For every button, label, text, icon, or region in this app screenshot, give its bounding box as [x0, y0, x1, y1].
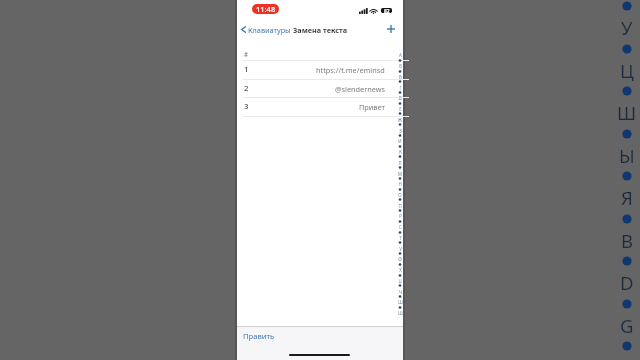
staticText: С: [399, 224, 402, 229]
staticText: https://t.me/eminsd: [316, 65, 385, 75]
button[interactable]: 1: [237, 60, 403, 79]
staticText: 3: [244, 101, 249, 112]
staticText: Х: [399, 267, 402, 272]
staticText: 11:48: [256, 4, 276, 14]
staticText: Т: [399, 235, 402, 240]
button[interactable]: Добавить: [383, 21, 399, 37]
staticText: А: [399, 52, 402, 57]
button[interactable]: Клавиатуры: [241, 23, 291, 36]
staticText: Ш: [398, 299, 403, 304]
staticText: @slendernews: [335, 84, 385, 94]
staticText: Л: [398, 160, 402, 165]
staticText: Е: [399, 106, 402, 111]
staticText: М: [398, 171, 402, 176]
staticText: Ц: [398, 278, 402, 283]
staticText: Ш: [617, 100, 637, 125]
staticText: У: [621, 15, 633, 40]
staticText: К: [399, 149, 402, 154]
staticText: У: [399, 246, 402, 251]
staticText: Я: [621, 185, 633, 210]
staticText: Замена текста: [293, 25, 348, 35]
button[interactable]: 2: [237, 79, 403, 98]
staticText: #: [244, 50, 248, 58]
staticText: 2: [244, 83, 249, 94]
staticText: Клавиатуры: [248, 25, 291, 35]
staticText: Д: [398, 95, 402, 100]
staticText: П: [398, 203, 402, 208]
staticText: Б: [399, 63, 402, 68]
staticText: Ы: [619, 143, 635, 168]
staticText: Ч: [399, 289, 402, 294]
staticText: В: [399, 74, 402, 79]
staticText: B: [621, 228, 634, 253]
staticText: Р: [399, 213, 402, 218]
button[interactable]: Указатель разделов: [395, 47, 405, 317]
staticText: И: [398, 138, 402, 143]
staticText: Ж: [398, 117, 402, 122]
staticText: Щ: [398, 310, 403, 315]
staticText: З: [399, 128, 402, 133]
staticText: Ф: [398, 256, 402, 261]
staticText: Г: [399, 85, 402, 90]
button[interactable]: Править: [243, 331, 275, 341]
staticText: О: [398, 192, 402, 197]
button[interactable]: #: [237, 48, 403, 60]
staticText: D: [620, 270, 634, 295]
staticText: 1: [244, 64, 249, 75]
staticText: Привет: [359, 102, 385, 112]
staticText: G: [620, 313, 634, 338]
staticText: 82: [384, 8, 390, 13]
button[interactable]: 3: [237, 97, 403, 116]
staticText: Н: [398, 181, 402, 186]
staticText: Ц: [620, 58, 634, 83]
